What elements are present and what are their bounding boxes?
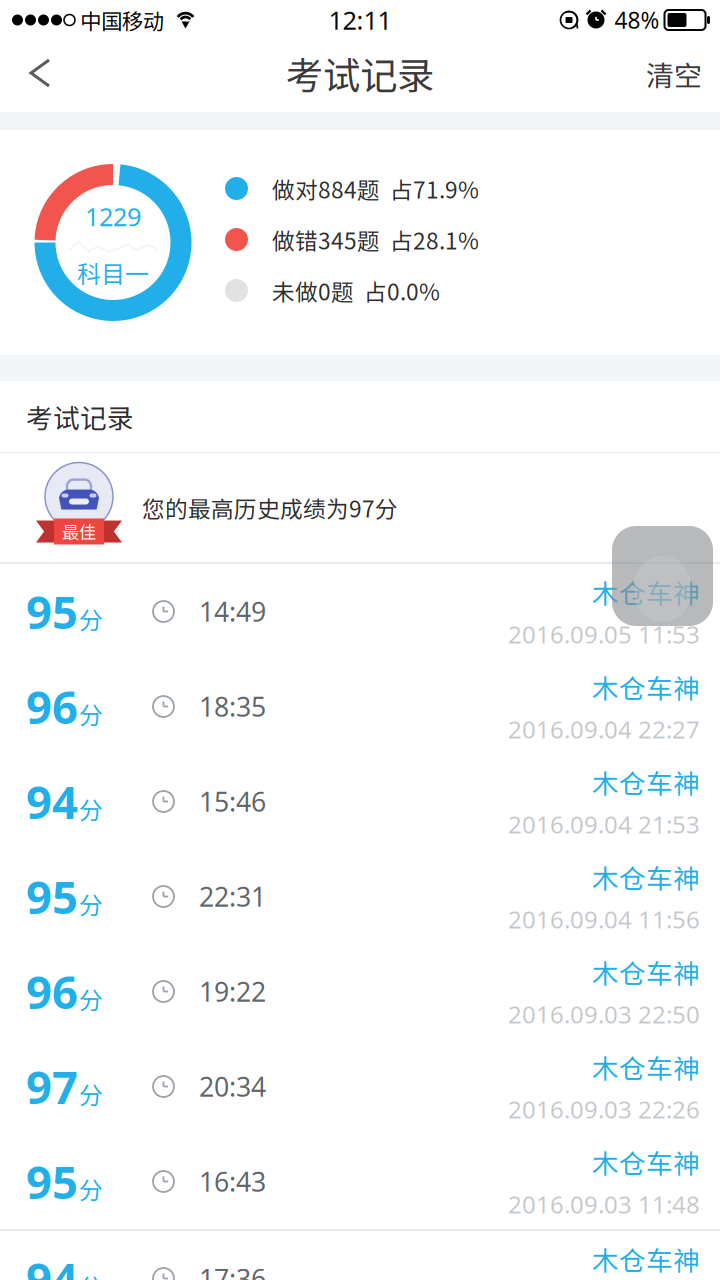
staticText: 96 — [26, 961, 78, 1022]
staticText: 48% — [614, 5, 659, 35]
staticText: 15:46 — [199, 784, 266, 819]
staticText: 木仓车神 — [592, 1048, 700, 1086]
staticText: 木仓车神 — [592, 953, 700, 991]
staticText: 清空 — [646, 54, 702, 94]
staticText: 分 — [79, 1268, 103, 1280]
staticText: 20:34 — [199, 1069, 266, 1104]
staticText: 分 — [79, 886, 103, 921]
staticText: 科目一 — [77, 255, 149, 290]
staticText: 分 — [79, 696, 103, 731]
button[interactable]: 清空 — [620, 40, 720, 112]
staticText: 2016.09.05 11:53 — [508, 618, 700, 650]
button[interactable]: 95 — [0, 564, 720, 659]
staticText: 分 — [79, 981, 103, 1016]
staticText: 97 — [26, 1056, 78, 1117]
staticText: 2016.09.03 11:48 — [508, 1188, 700, 1220]
staticText: 95 — [26, 581, 78, 642]
staticText: 95 — [26, 1151, 78, 1212]
staticText: 木仓车神 — [592, 1240, 700, 1278]
staticText: 2016.09.03 22:26 — [508, 1093, 700, 1125]
button[interactable]: Back — [0, 40, 79, 112]
button[interactable]: 94 — [0, 1231, 720, 1280]
staticText: 分 — [79, 1076, 103, 1111]
staticText: 木仓车神 — [592, 573, 700, 611]
staticText: 17:36 — [199, 1261, 266, 1280]
button[interactable]: 95 — [0, 1134, 720, 1229]
staticText: 19:22 — [199, 974, 266, 1009]
staticText: 分 — [79, 791, 103, 826]
staticText: 分 — [79, 601, 103, 636]
staticText: 中国移动 — [80, 5, 164, 35]
staticText: 考试记录 — [26, 397, 134, 436]
staticText: 14:49 — [199, 594, 266, 629]
staticText: 未做0题 占0.0% — [272, 274, 440, 307]
staticText: 12:11 — [328, 3, 391, 37]
staticText: 95 — [26, 866, 78, 927]
button[interactable]: 95 — [0, 849, 720, 944]
staticText: 做对884题 占71.9% — [272, 172, 479, 205]
staticText: 2016.09.04 11:56 — [508, 903, 700, 935]
staticText: 木仓车神 — [592, 668, 700, 706]
staticText: 做错345题 占28.1% — [272, 223, 479, 256]
staticText: 2016.09.04 21:53 — [508, 808, 700, 840]
staticText: 2016.09.03 22:50 — [508, 998, 700, 1030]
staticText: 分 — [79, 1171, 103, 1206]
staticText: 18:35 — [199, 689, 266, 724]
staticText: 木仓车神 — [592, 763, 700, 801]
staticText: 1229 — [85, 200, 141, 233]
staticText: 最佳 — [62, 519, 96, 544]
staticText: 96 — [26, 676, 78, 737]
staticText: 考试记录 — [286, 46, 434, 100]
staticText: 94 — [26, 1248, 78, 1280]
button[interactable]: 97 — [0, 1039, 720, 1134]
button[interactable]: 96 — [0, 944, 720, 1039]
staticText: 木仓车神 — [592, 1143, 700, 1181]
staticText: 16:43 — [199, 1164, 266, 1199]
staticText: 22:31 — [199, 879, 266, 914]
button[interactable]: 96 — [0, 659, 720, 754]
staticText: 94 — [26, 771, 78, 832]
staticText: 您的最高历史成绩为97分 — [142, 491, 398, 524]
staticText: 2016.09.04 22:27 — [508, 713, 700, 745]
staticText: 木仓车神 — [592, 858, 700, 896]
button[interactable]: 94 — [0, 754, 720, 849]
